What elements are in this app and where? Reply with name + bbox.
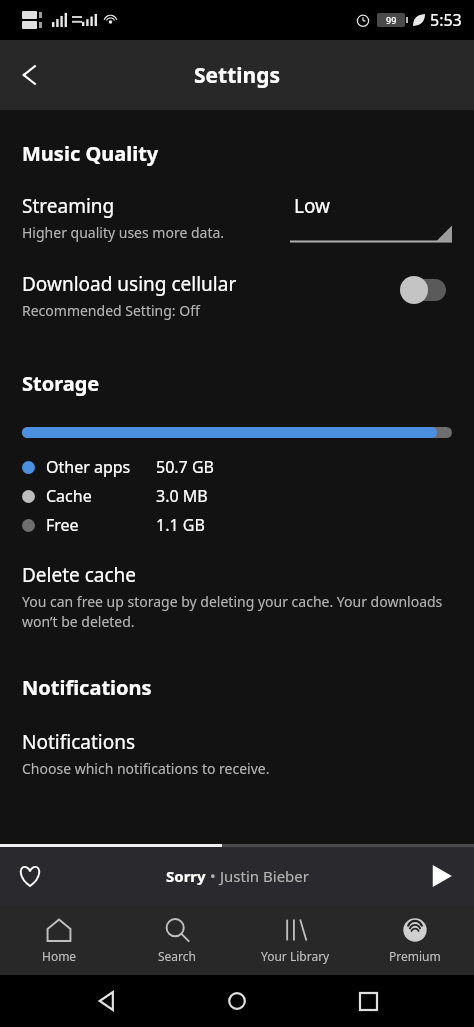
button[interactable]: Play xyxy=(420,854,464,898)
staticText: Low xyxy=(294,193,331,219)
staticText: 50.7 GB xyxy=(156,456,214,478)
staticText: Recommended Setting: Off xyxy=(22,301,200,320)
staticText: 1.1 GB xyxy=(156,514,205,536)
staticText: Storage xyxy=(22,370,100,397)
staticText: 99 xyxy=(386,14,397,26)
button[interactable]: Home xyxy=(212,976,262,1026)
staticText: Streaming xyxy=(22,193,115,219)
staticText: Free xyxy=(46,514,79,536)
staticText: • xyxy=(206,866,220,886)
staticText: Choose which notifications to receive. xyxy=(22,759,270,778)
staticText: Settings xyxy=(194,61,281,90)
button[interactable]: Premium xyxy=(355,909,474,972)
button[interactable]: Back xyxy=(81,976,131,1026)
button[interactable]: Recent apps xyxy=(343,976,393,1026)
button[interactable]: Save to your library xyxy=(8,854,52,898)
staticText: Home xyxy=(42,948,77,964)
staticText: Other apps xyxy=(46,456,131,478)
button[interactable]: Save to your library xyxy=(0,847,474,905)
button[interactable]: Back xyxy=(6,51,54,99)
staticText: Search xyxy=(158,948,196,964)
staticText: Sorry xyxy=(166,866,206,886)
staticText: Cache xyxy=(46,485,92,507)
staticText: Notifications xyxy=(22,729,136,755)
button[interactable]: Other apps xyxy=(22,456,452,478)
button[interactable]: Free xyxy=(22,514,452,536)
staticText: Higher quality uses more data. xyxy=(22,223,225,242)
button[interactable]: Delete cache xyxy=(22,562,452,632)
staticText: Notifications xyxy=(22,674,152,701)
staticText: 3.0 MB xyxy=(156,485,208,507)
button[interactable]: Home xyxy=(0,909,118,972)
button[interactable]: Cache xyxy=(22,485,452,507)
staticText: Delete cache xyxy=(22,562,137,588)
staticText: Premium xyxy=(389,948,441,964)
staticText: Your Library xyxy=(261,948,330,964)
button[interactable]: Download using cellular toggle, off xyxy=(400,275,452,305)
button[interactable]: Streaming xyxy=(22,193,452,243)
button[interactable]: Your Library xyxy=(236,909,355,972)
button[interactable]: Streaming quality Low xyxy=(290,193,452,243)
button[interactable]: Download using cellular xyxy=(22,271,452,320)
button[interactable]: Search xyxy=(118,909,236,972)
staticText: You can free up storage by deleting your… xyxy=(22,592,452,632)
staticText: 5:53 xyxy=(430,9,462,31)
staticText: Music Quality xyxy=(22,140,159,167)
staticText: Download using cellular xyxy=(22,271,237,297)
staticText: Justin Bieber xyxy=(220,866,309,886)
button[interactable]: Notifications xyxy=(22,729,452,778)
